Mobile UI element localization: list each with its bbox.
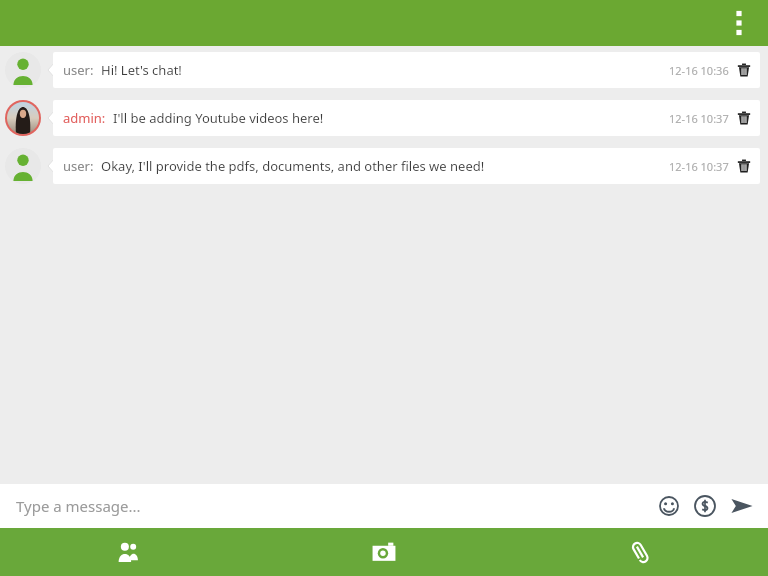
- button[interactable]: Delete message: [736, 62, 752, 78]
- button[interactable]: Emoji: [654, 491, 684, 521]
- button[interactable]: Contacts: [0, 528, 256, 576]
- button[interactable]: Attach file: [512, 528, 768, 576]
- staticText: user:: [63, 61, 94, 79]
- button[interactable]: admin:: [0, 100, 768, 136]
- button[interactable]: More options: [722, 6, 756, 40]
- staticText: 12-16 10:37: [669, 111, 729, 126]
- staticText: Type a message...: [16, 496, 141, 516]
- button[interactable]: user:: [0, 148, 768, 184]
- button[interactable]: Send money: [690, 491, 720, 521]
- staticText: user:: [63, 157, 94, 175]
- button[interactable]: Camera: [256, 528, 512, 576]
- staticText: I'll be adding Youtube videos here!: [113, 109, 324, 127]
- staticText: Hi! Let's chat!: [101, 61, 182, 79]
- staticText: 12-16 10:37: [669, 159, 729, 174]
- button[interactable]: Send: [726, 490, 758, 522]
- button[interactable]: Delete message: [736, 110, 752, 126]
- staticText: Okay, I'll provide the pdfs, documents, …: [101, 157, 485, 175]
- button[interactable]: Delete message: [736, 158, 752, 174]
- button[interactable]: user:: [0, 52, 768, 88]
- staticText: 12-16 10:36: [669, 63, 729, 78]
- staticText: admin:: [63, 109, 106, 127]
